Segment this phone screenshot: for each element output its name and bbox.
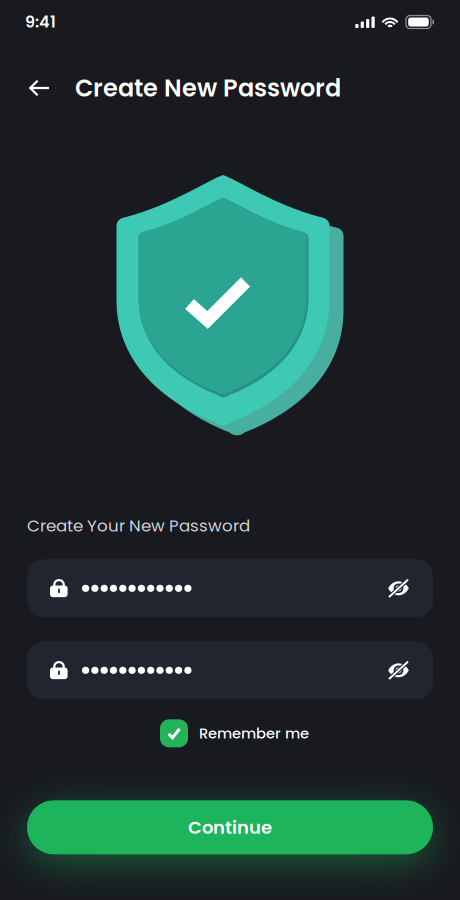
staticText: Create New Password (75, 71, 341, 105)
staticText: Remember me (199, 723, 309, 744)
button[interactable]: Continue (27, 800, 433, 854)
button[interactable]: Remember me (147, 715, 313, 751)
staticText: Create Your New Password (27, 514, 250, 537)
button[interactable]: Back (19, 66, 60, 110)
button[interactable] (27, 559, 433, 617)
staticText: Continue (188, 815, 272, 840)
button[interactable] (27, 641, 433, 699)
staticText: 9:41 (25, 11, 56, 33)
